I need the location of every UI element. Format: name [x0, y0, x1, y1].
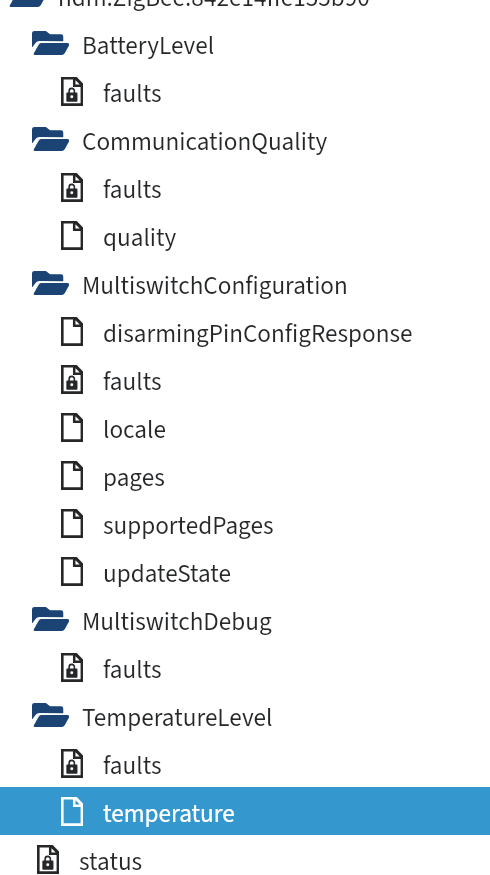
button[interactable]: faults — [0, 163, 490, 211]
button[interactable]: quality — [0, 211, 490, 259]
staticText: BatteryLevel — [82, 28, 215, 64]
staticText: pages — [103, 460, 165, 496]
button[interactable]: updateState — [0, 547, 490, 595]
staticText: disarmingPinConfigResponse — [103, 316, 413, 352]
button[interactable]: faults — [0, 67, 490, 115]
button[interactable]: temperature — [0, 787, 490, 835]
button[interactable]: disarmingPinConfigResponse — [0, 307, 490, 355]
staticText: faults — [103, 748, 162, 784]
staticText: faults — [103, 652, 162, 688]
button[interactable]: MultiswitchDebug — [0, 595, 490, 643]
staticText: quality — [103, 220, 177, 256]
button[interactable]: BatteryLevel — [0, 19, 490, 67]
button[interactable]: TemperatureLevel — [0, 691, 490, 739]
button[interactable]: supportedPages — [0, 499, 490, 547]
staticText: locale — [103, 412, 166, 448]
button[interactable]: faults — [0, 355, 490, 403]
button[interactable]: locale — [0, 403, 490, 451]
button[interactable]: hdm:ZigBee:842e14ffe155b90 — [0, 0, 490, 19]
staticText: TemperatureLevel — [82, 700, 273, 736]
button[interactable]: pages — [0, 451, 490, 499]
staticText: CommunicationQuality — [82, 124, 328, 160]
staticText: faults — [103, 76, 162, 112]
staticText: supportedPages — [103, 508, 274, 544]
staticText: MultiswitchDebug — [82, 604, 272, 640]
staticText: faults — [103, 172, 162, 208]
staticText: MultiswitchConfiguration — [82, 268, 348, 304]
staticText: updateState — [103, 556, 232, 592]
staticText: status — [79, 844, 143, 875]
button[interactable]: faults — [0, 643, 490, 691]
button[interactable]: faults — [0, 739, 490, 787]
staticText: faults — [103, 364, 162, 400]
button[interactable]: CommunicationQuality — [0, 115, 490, 163]
button[interactable]: status — [0, 835, 490, 875]
staticText: temperature — [103, 796, 235, 832]
staticText: hdm:ZigBee:842e14ffe155b90 — [58, 0, 370, 16]
button[interactable]: MultiswitchConfiguration — [0, 259, 490, 307]
